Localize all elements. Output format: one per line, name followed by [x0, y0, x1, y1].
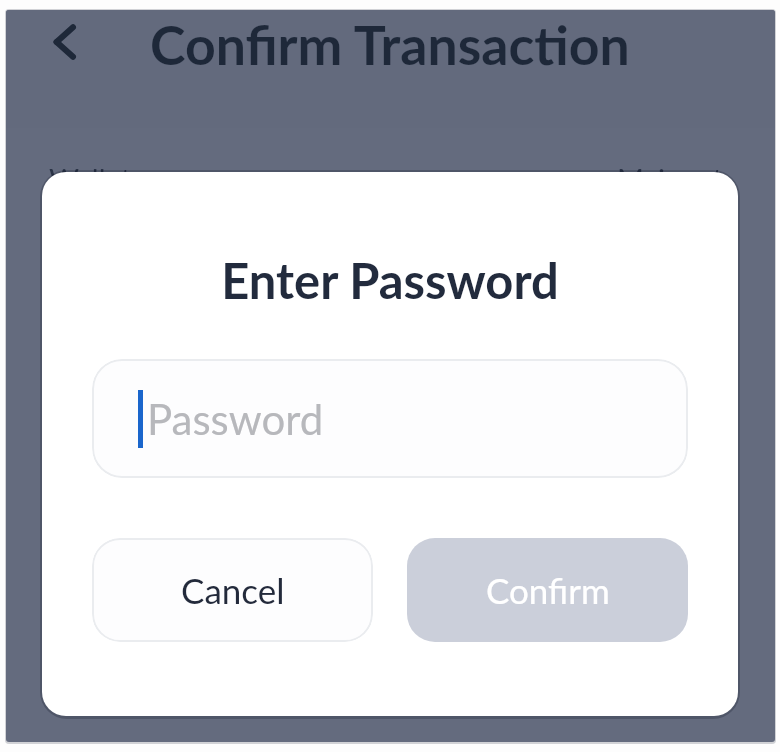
button[interactable]: Cancel	[92, 538, 373, 642]
button[interactable]: Password	[92, 359, 688, 478]
staticText: Confirm	[486, 569, 610, 611]
staticText: Confirm Transaction	[150, 12, 630, 76]
staticText: Password	[147, 394, 324, 444]
button[interactable]: Back	[36, 12, 102, 78]
staticText: Mainnet	[617, 161, 723, 196]
staticText: Wallet	[49, 161, 132, 196]
staticText: Enter Password	[221, 251, 559, 310]
button[interactable]: Confirm	[407, 538, 688, 642]
staticText: Cancel	[181, 569, 285, 611]
